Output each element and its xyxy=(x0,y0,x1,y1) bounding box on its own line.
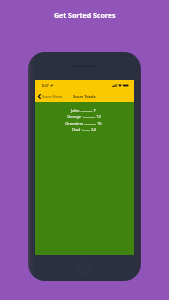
staticText: Grandma ——— 15 xyxy=(65,121,102,126)
staticText: Score Sheet xyxy=(42,94,63,99)
staticText: Get Sorted Scores xyxy=(54,11,116,21)
staticText: Score Totals xyxy=(73,94,96,99)
staticText: John ——— 7 xyxy=(71,108,96,113)
button[interactable]: Back xyxy=(38,92,63,100)
staticText: 8:27 xyxy=(42,83,49,88)
staticText: George ·——— 12 xyxy=(67,114,101,119)
staticText: Dad ·—— 24 xyxy=(72,127,96,132)
other: Back xyxy=(38,94,41,99)
